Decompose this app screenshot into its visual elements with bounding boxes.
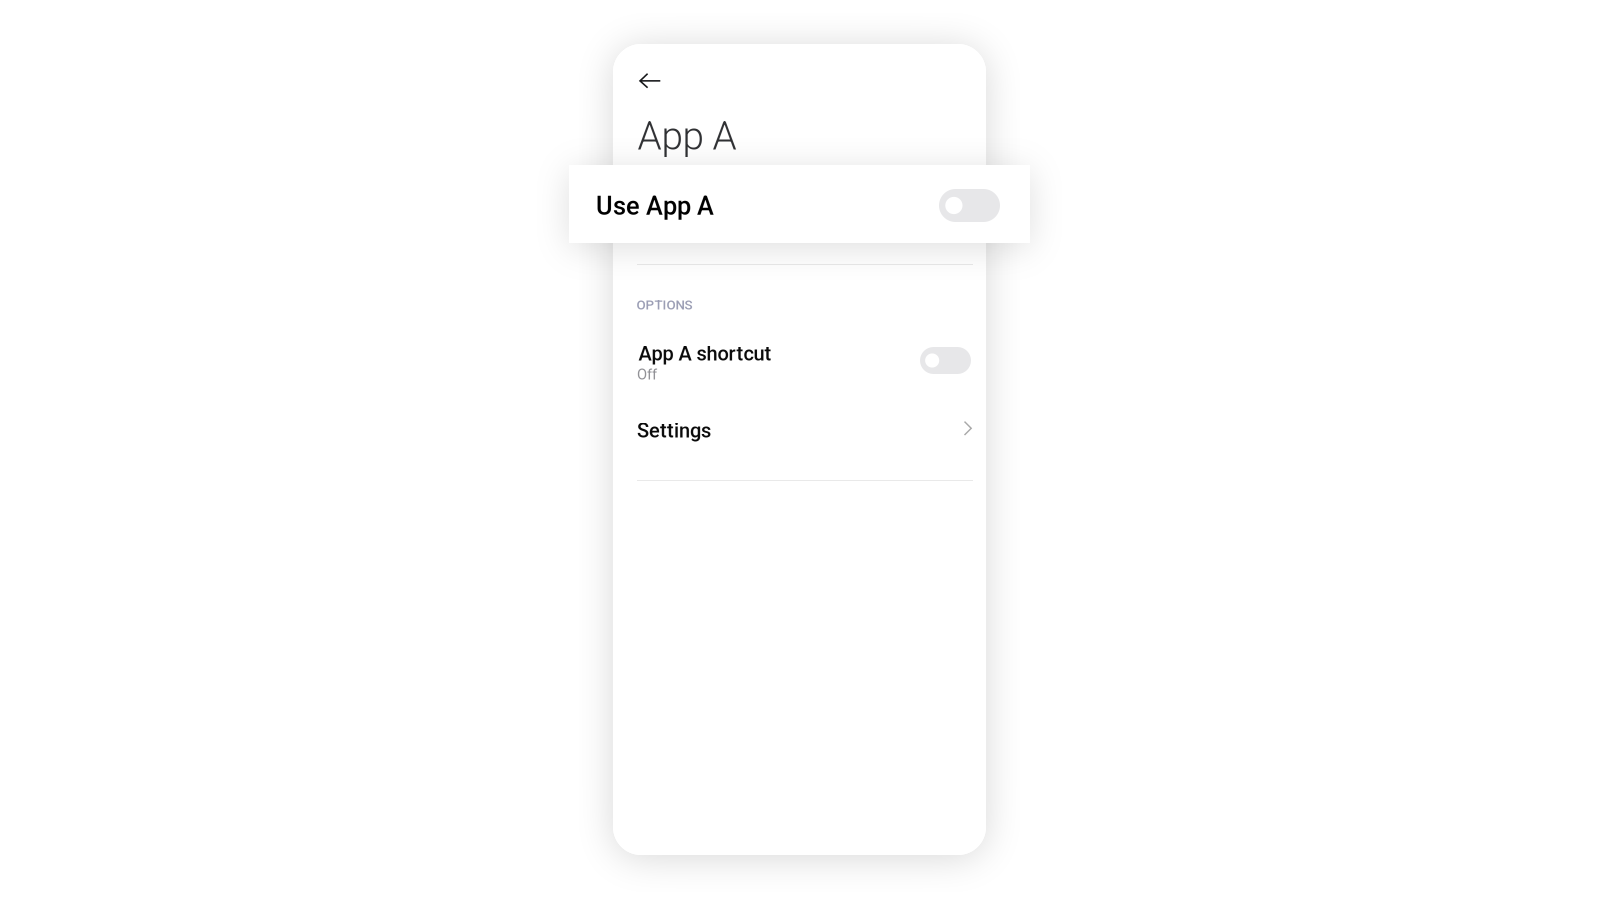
- staticText: OPTIONS: [636, 297, 692, 313]
- button[interactable]: Use App A: [569, 165, 1030, 243]
- button[interactable]: Back: [625, 60, 676, 102]
- staticText: App A shortcut: [638, 342, 771, 365]
- staticText: Settings: [637, 419, 711, 442]
- staticText: Use App A: [596, 191, 714, 221]
- button[interactable]: Settings: [637, 402, 973, 458]
- staticText: App A: [637, 114, 736, 159]
- button[interactable]: Use App A: [637, 191, 973, 264]
- staticText: Use App A: [638, 216, 730, 239]
- staticText: Off: [637, 366, 657, 383]
- button[interactable]: App A shortcut: [637, 329, 973, 397]
